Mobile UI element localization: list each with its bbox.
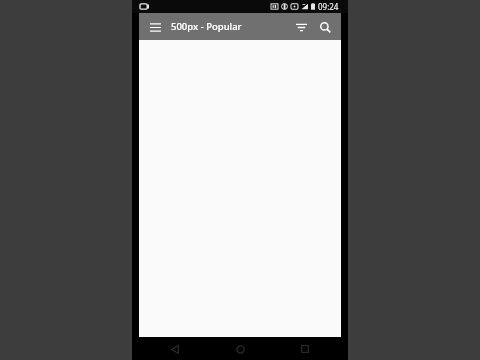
- button[interactable]: Home: [227, 339, 253, 359]
- staticText: 500px - Popular: [171, 20, 290, 33]
- button[interactable]: Back: [162, 339, 188, 359]
- button[interactable]: Search: [314, 16, 336, 38]
- button[interactable]: Recent apps: [292, 339, 318, 359]
- button[interactable]: Open navigation drawer: [145, 17, 165, 37]
- staticText: 09:24: [318, 1, 339, 12]
- button[interactable]: Filter: [290, 16, 312, 38]
